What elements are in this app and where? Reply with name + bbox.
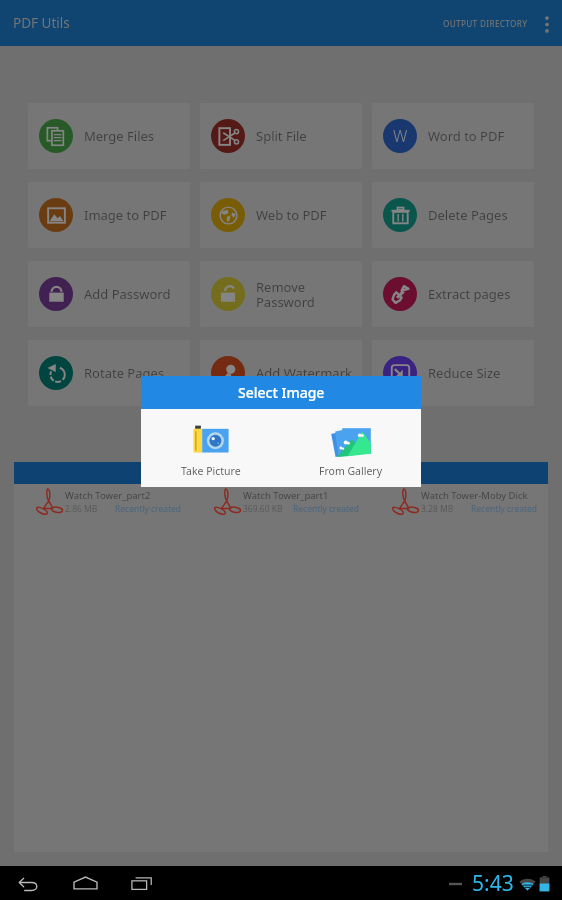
button[interactable]: Remove Password xyxy=(200,261,362,327)
staticText: Word to PDF xyxy=(428,127,528,145)
button[interactable]: Merge Files xyxy=(28,103,190,169)
button[interactable]: W xyxy=(372,103,534,169)
staticText: Watch Tower_part1 xyxy=(243,489,329,502)
staticText: Watch Tower-Moby Dick xyxy=(421,489,528,502)
button[interactable]: Add Watermark xyxy=(200,340,362,406)
button[interactable]: Rotate Pages xyxy=(28,340,190,406)
staticText: From Gallery xyxy=(319,464,383,478)
staticText: Reduce Size xyxy=(428,364,528,382)
button[interactable]: OUTPUT DIRECTORY xyxy=(437,8,534,39)
button[interactable]: Back xyxy=(11,866,45,900)
staticText: Recently created xyxy=(293,503,360,515)
button[interactable]: Watch Tower-Moby Dick xyxy=(370,484,548,520)
staticText: Take Picture xyxy=(181,464,241,478)
staticText: W xyxy=(393,125,408,147)
staticText: Rotate Pages xyxy=(84,364,184,382)
staticText: Select Image xyxy=(238,383,325,402)
button[interactable]: Web to PDF xyxy=(200,182,362,248)
staticText: Extract pages xyxy=(428,285,528,303)
staticText: 5:43 xyxy=(472,869,514,898)
staticText: OUTPUT DIRECTORY xyxy=(443,18,528,29)
staticText: Recently created xyxy=(115,503,182,515)
button[interactable]: Image to PDF xyxy=(28,182,190,248)
button[interactable]: Delete Pages xyxy=(372,182,534,248)
button[interactable]: Home xyxy=(68,866,102,900)
staticText: 3.28 MB xyxy=(421,503,471,515)
staticText: PDF Utils xyxy=(13,14,70,32)
staticText: Remove Password xyxy=(256,278,356,311)
staticText: 369.60 KB xyxy=(243,503,293,515)
staticText: Add Watermark xyxy=(256,364,356,382)
staticText: Image to PDF xyxy=(84,206,184,224)
button[interactable]: Take Picture xyxy=(141,409,281,487)
staticText: 2.86 MB xyxy=(65,503,115,515)
staticText: Add Password xyxy=(84,285,184,303)
staticText: Split File xyxy=(256,127,356,145)
button[interactable]: Extract pages xyxy=(372,261,534,327)
staticText: Web to PDF xyxy=(256,206,356,224)
button[interactable]: Reduce Size xyxy=(372,340,534,406)
button[interactable]: From Gallery xyxy=(281,409,421,487)
staticText: Recently created xyxy=(471,503,538,515)
staticText: Watch Tower_part2 xyxy=(65,489,151,502)
button[interactable]: Watch Tower_part2 xyxy=(14,484,192,520)
staticText: Delete Pages xyxy=(428,206,528,224)
button[interactable]: Split File xyxy=(200,103,362,169)
button[interactable]: Recent apps xyxy=(125,866,159,900)
button[interactable]: Add Password xyxy=(28,261,190,327)
staticText: Merge Files xyxy=(84,127,184,145)
button[interactable]: More options xyxy=(534,11,560,37)
button[interactable]: Watch Tower_part1 xyxy=(192,484,370,520)
